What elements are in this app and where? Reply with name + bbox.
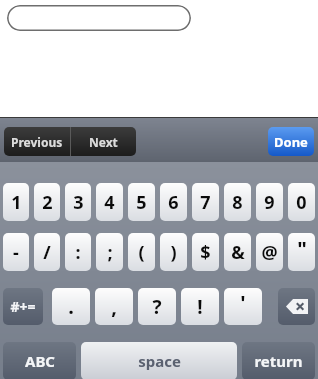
button[interactable]: ! bbox=[181, 288, 219, 325]
staticText: 2 bbox=[42, 190, 53, 215]
button[interactable]: . bbox=[52, 288, 90, 325]
button[interactable]: space bbox=[81, 342, 237, 379]
staticText: 5 bbox=[136, 190, 147, 215]
button[interactable] bbox=[7, 5, 191, 31]
button[interactable]: Previous bbox=[4, 127, 70, 156]
staticText: ? bbox=[152, 294, 162, 320]
button[interactable]: " bbox=[288, 233, 315, 271]
staticText: 6 bbox=[168, 190, 179, 215]
staticText: 1 bbox=[11, 190, 22, 215]
staticText: ! bbox=[197, 294, 203, 320]
button[interactable]: 1 bbox=[3, 183, 29, 221]
staticText: 3 bbox=[73, 190, 84, 215]
button[interactable]: ; bbox=[96, 233, 123, 271]
staticText: ) bbox=[170, 240, 177, 265]
staticText: 4 bbox=[104, 190, 115, 215]
staticText: ; bbox=[107, 240, 113, 265]
staticText: ( bbox=[138, 240, 145, 265]
button[interactable]: $ bbox=[192, 233, 219, 271]
button[interactable]: 5 bbox=[128, 183, 155, 221]
button[interactable]: Done bbox=[268, 127, 314, 156]
button[interactable]: 2 bbox=[34, 183, 60, 221]
button[interactable]: 0 bbox=[288, 183, 315, 221]
staticText: $ bbox=[200, 240, 211, 265]
button[interactable]: ( bbox=[128, 233, 155, 271]
staticText: - bbox=[13, 240, 19, 265]
button[interactable]: ' bbox=[224, 288, 262, 325]
staticText: / bbox=[43, 240, 51, 265]
staticText: Next bbox=[89, 134, 118, 150]
button[interactable]: & bbox=[224, 233, 251, 271]
staticText: . bbox=[68, 293, 74, 320]
button[interactable]: 6 bbox=[160, 183, 187, 221]
button[interactable]: ? bbox=[138, 288, 176, 325]
staticText: 8 bbox=[232, 190, 243, 215]
staticText: 9 bbox=[264, 190, 275, 215]
button[interactable]: return bbox=[242, 342, 315, 379]
button[interactable]: 9 bbox=[256, 183, 283, 221]
staticText: @ bbox=[261, 240, 278, 265]
button[interactable]: / bbox=[34, 233, 60, 271]
staticText: 7 bbox=[200, 190, 211, 215]
button[interactable]: - bbox=[3, 233, 29, 271]
button[interactable]: ABC bbox=[3, 342, 76, 379]
button[interactable]: , bbox=[95, 288, 133, 325]
button[interactable]: @ bbox=[256, 233, 283, 271]
button[interactable]: 4 bbox=[96, 183, 123, 221]
staticText: Done bbox=[274, 133, 308, 151]
staticText: #+= bbox=[10, 297, 36, 316]
button[interactable]: 8 bbox=[224, 183, 251, 221]
button[interactable]: Next bbox=[71, 127, 136, 156]
staticText: & bbox=[231, 240, 245, 265]
staticText: Previous bbox=[11, 134, 63, 150]
staticText: ' bbox=[240, 289, 246, 316]
button[interactable]: 7 bbox=[192, 183, 219, 221]
staticText: return bbox=[254, 351, 303, 371]
staticText: , bbox=[111, 293, 117, 320]
button[interactable]: More symbols bbox=[3, 288, 43, 325]
staticText: 0 bbox=[296, 190, 307, 215]
staticText: : bbox=[75, 240, 81, 265]
button[interactable]: Backspace bbox=[278, 288, 315, 325]
staticText: space bbox=[138, 351, 181, 371]
button[interactable]: : bbox=[65, 233, 91, 271]
button[interactable]: 3 bbox=[65, 183, 91, 221]
staticText: " bbox=[297, 235, 307, 262]
staticText: ABC bbox=[25, 351, 55, 371]
button[interactable]: ) bbox=[160, 233, 187, 271]
